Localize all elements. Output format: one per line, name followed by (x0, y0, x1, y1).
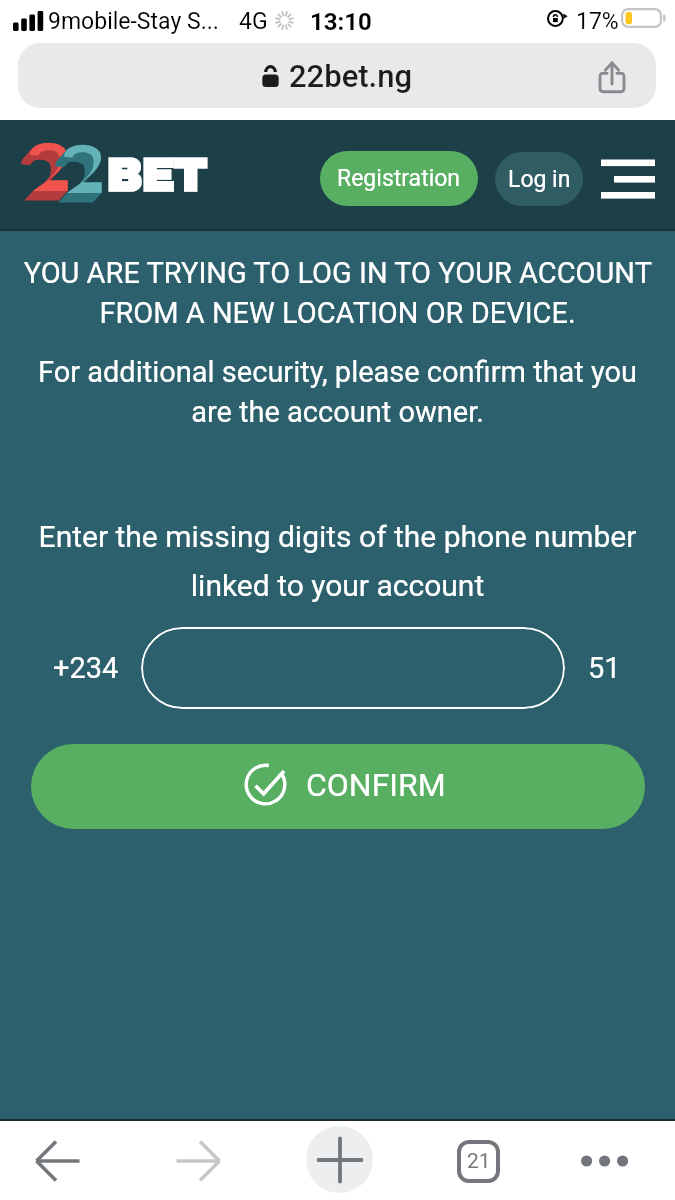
staticText: Registration (337, 165, 461, 192)
staticText: Enter the missing digits of the phone nu… (26, 519, 649, 603)
staticText: 9mobile-Stay S... (48, 8, 219, 35)
button[interactable] (141, 627, 565, 709)
staticText: 22bet.ng (289, 58, 413, 94)
staticText: +234 (53, 651, 119, 685)
staticText: 4G (239, 8, 268, 35)
button[interactable]: CONFIRM (31, 744, 645, 829)
button[interactable]: Forward (162, 1125, 234, 1197)
button[interactable]: Tabs (444, 1127, 512, 1195)
staticText: Log in (508, 166, 571, 193)
button[interactable]: New tab (306, 1126, 373, 1193)
button[interactable]: Menu (594, 152, 662, 206)
staticText: YOU ARE TRYING TO LOG IN TO YOUR ACCOUNT… (14, 256, 661, 330)
staticText: BET (106, 151, 206, 200)
button[interactable]: Log in (495, 152, 583, 206)
button[interactable]: Registration (320, 151, 478, 206)
button[interactable]: More (569, 1127, 637, 1195)
staticText: For additional security, please confirm … (30, 355, 645, 429)
staticText: 21 (467, 1149, 491, 1174)
staticText: 13:10 (310, 8, 372, 36)
staticText: 17% (576, 8, 619, 35)
button[interactable]: 22bet.ng (18, 43, 656, 108)
staticText: CONFIRM (306, 766, 446, 804)
button[interactable]: Back (22, 1125, 94, 1197)
staticText: 51 (588, 651, 621, 685)
button[interactable]: Share (595, 59, 629, 93)
